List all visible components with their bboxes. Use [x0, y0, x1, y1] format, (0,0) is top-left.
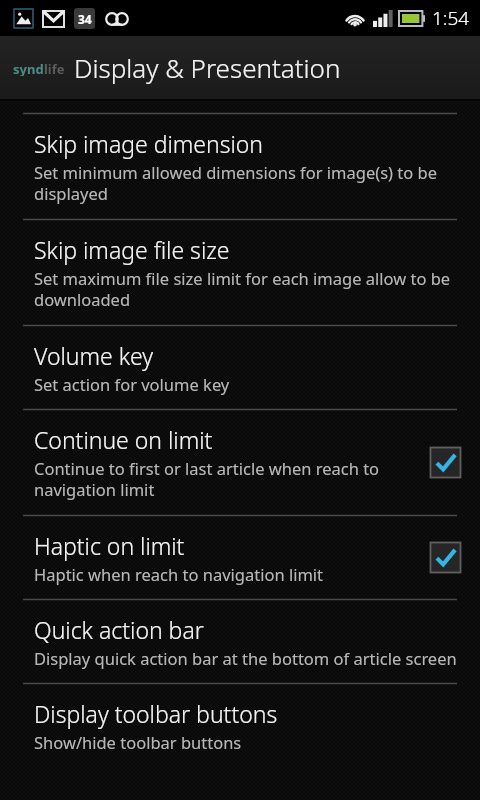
button[interactable]: Skip image file size: [0, 220, 480, 325]
staticText: Display toolbar buttons: [34, 698, 278, 729]
staticText: 34: [78, 11, 92, 27]
staticText: Continue to first or last article when r…: [34, 457, 417, 501]
staticText: Quick action bar: [34, 614, 204, 645]
staticText: Haptic when reach to navigation limit: [34, 563, 324, 585]
staticText: Skip image dimension: [34, 128, 264, 159]
button[interactable]: Skip image dimension: [0, 114, 480, 219]
staticText: Show/hide toolbar buttons: [34, 731, 242, 753]
button[interactable]: Continue on limit: [0, 410, 480, 515]
staticText: Set action for volume key: [34, 373, 230, 395]
button[interactable]: Display toolbar buttons: [0, 684, 480, 767]
staticText: synd: [13, 60, 44, 76]
button[interactable]: Haptic on limit: [0, 516, 480, 599]
staticText: Skip image file size: [34, 234, 230, 265]
button[interactable]: Toggle setting: [429, 446, 462, 479]
staticText: Display quick action bar at the bottom o…: [34, 647, 457, 669]
staticText: Set maximum file size limit for each ima…: [34, 267, 462, 311]
staticText: Display & Presentation: [74, 50, 341, 85]
staticText: Haptic on limit: [34, 530, 185, 561]
staticText: Set minimum allowed dimensions for image…: [34, 161, 462, 205]
staticText: Continue on limit: [34, 424, 213, 455]
staticText: 1:54: [432, 5, 470, 31]
button[interactable]: Toggle setting: [429, 541, 462, 574]
staticText: life: [44, 60, 65, 76]
button[interactable]: Quick action bar: [0, 600, 480, 683]
button[interactable]: Volume key: [0, 326, 480, 409]
button[interactable]: synd: [0, 36, 480, 99]
staticText: Volume key: [34, 340, 154, 371]
